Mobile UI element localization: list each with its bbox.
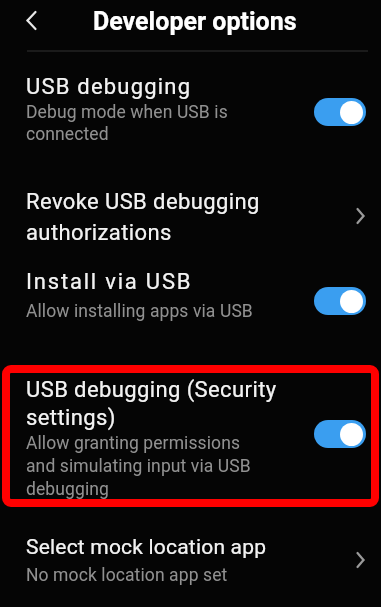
- staticText: No mock location app set: [26, 565, 228, 586]
- staticText: Revoke USB debugging authorizations: [26, 189, 260, 245]
- button[interactable]: Install via USB: [0, 260, 381, 336]
- button[interactable]: [314, 420, 366, 448]
- button[interactable]: Developer options: [0, 0, 381, 48]
- button[interactable]: [314, 287, 366, 315]
- staticText: Allow installing apps via USB: [26, 301, 253, 322]
- staticText: Developer options: [93, 7, 297, 36]
- button[interactable]: Select mock location app: [0, 524, 381, 600]
- staticText: Install via USB: [26, 269, 193, 295]
- button[interactable]: Revoke USB debugging authorizations: [0, 176, 381, 256]
- staticText: Allow granting permissions and simulatin…: [26, 433, 251, 499]
- button[interactable]: USB debugging (Security settings): [0, 366, 381, 506]
- staticText: USB debugging: [26, 74, 192, 100]
- staticText: USB debugging (Security settings): [26, 377, 277, 431]
- button[interactable]: [314, 98, 366, 126]
- staticText: Debug mode when USB is connected: [26, 102, 228, 145]
- staticText: Select mock location app: [26, 535, 267, 560]
- button[interactable]: USB debugging: [0, 64, 381, 160]
